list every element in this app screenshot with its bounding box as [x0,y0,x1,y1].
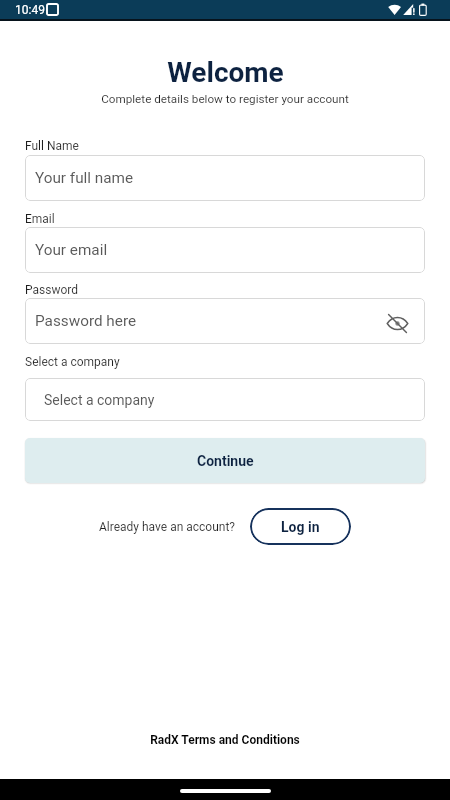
staticText: Password here [35,312,137,330]
staticText: Select a company [44,392,155,408]
staticText: Your full name [35,169,134,187]
staticText: Continue [197,453,254,469]
staticText: 10:49 [15,3,45,17]
button[interactable]: Toggle password visibility [384,308,410,334]
staticText: Select a company [25,355,120,369]
button[interactable]: Your full name [25,155,425,201]
button[interactable]: Password here [25,298,425,344]
button[interactable]: Your email [25,227,425,273]
staticText: Already have an account? [99,520,236,534]
staticText: Your email [35,241,108,259]
button[interactable]: Select a company [25,378,425,421]
staticText: Log in [281,519,320,535]
button[interactable]: RadX Terms and Conditions [0,733,450,747]
button[interactable]: Log in [250,508,351,545]
staticText: Email [25,212,55,226]
button[interactable]: Continue [25,438,425,483]
staticText: Password [25,283,79,297]
staticText: Full Name [25,139,79,153]
staticText: Complete details below to register your … [101,92,349,106]
staticText: Welcome [167,56,284,89]
